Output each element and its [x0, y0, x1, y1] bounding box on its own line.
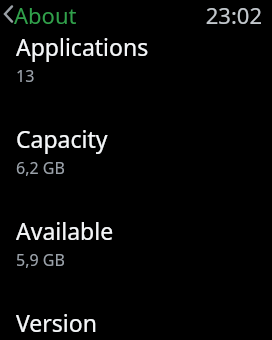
staticText: 6,2 GB [16, 157, 65, 179]
staticText: 23:02 [205, 0, 262, 27]
staticText: Applications [16, 31, 149, 62]
button[interactable]: Back to About [0, 0, 77, 27]
staticText: Available [16, 215, 114, 246]
staticText: Capacity [16, 123, 108, 154]
button[interactable]: Capacity [0, 123, 272, 179]
button[interactable]: Version [0, 307, 272, 340]
staticText: About [14, 0, 77, 27]
staticText: 13 [16, 65, 35, 87]
staticText: 5,9 GB [16, 249, 65, 271]
button[interactable]: Applications [0, 31, 272, 87]
staticText: Version [16, 307, 97, 338]
button[interactable]: Available [0, 215, 272, 271]
